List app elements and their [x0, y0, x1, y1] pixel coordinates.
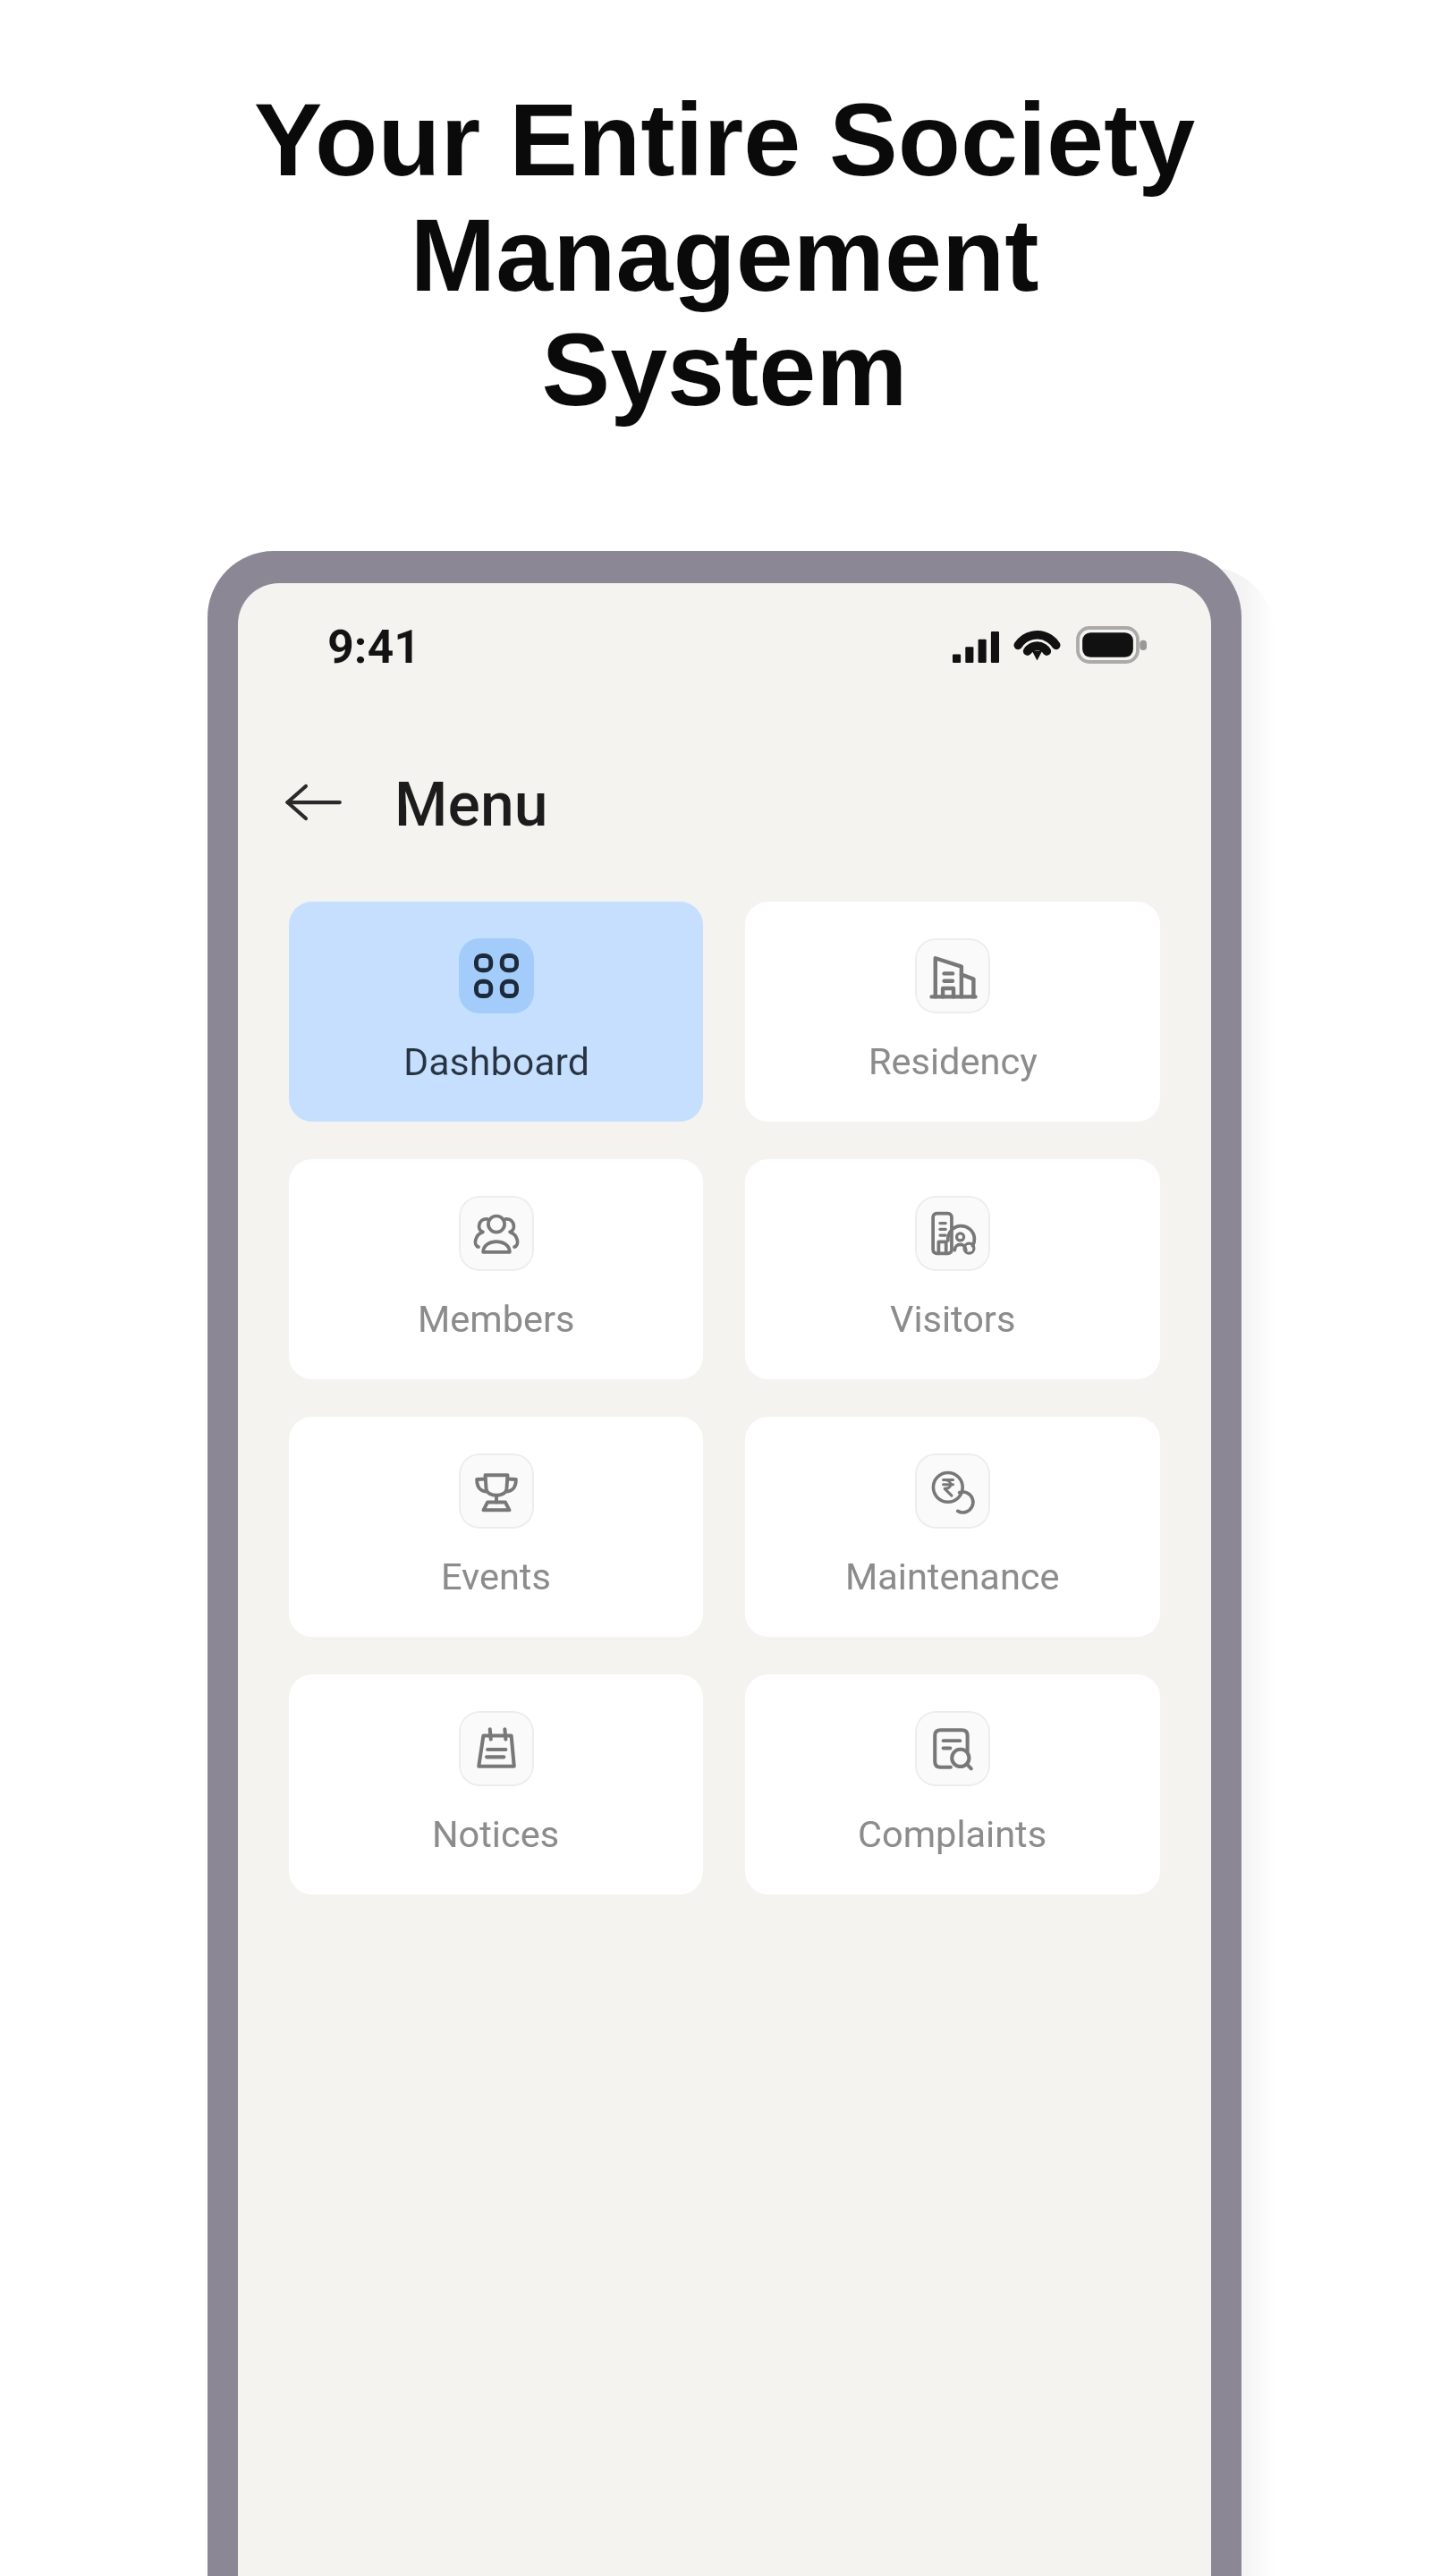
- button[interactable]: Visitors: [745, 1159, 1160, 1379]
- button[interactable]: Complaints: [745, 1674, 1160, 1894]
- staticText: 9:41: [327, 620, 421, 674]
- button[interactable]: Members: [289, 1159, 703, 1379]
- staticText: Maintenance: [845, 1555, 1060, 1598]
- staticText: Notices: [432, 1812, 560, 1856]
- staticText: Dashboard: [403, 1039, 589, 1084]
- staticText: Menu: [394, 769, 548, 841]
- button[interactable]: Notices: [289, 1674, 703, 1894]
- staticText: Members: [418, 1297, 575, 1341]
- staticText: Events: [441, 1555, 551, 1598]
- button[interactable]: Residency: [745, 902, 1160, 1122]
- button[interactable]: Dashboard: [289, 902, 703, 1122]
- staticText: Your Entire Society Management System: [0, 82, 1449, 427]
- button[interactable]: Maintenance: [745, 1417, 1160, 1637]
- staticText: Complaints: [858, 1812, 1047, 1856]
- staticText: Visitors: [890, 1297, 1016, 1341]
- staticText: Residency: [869, 1039, 1038, 1083]
- button[interactable]: Events: [289, 1417, 703, 1637]
- button[interactable]: Back: [272, 761, 354, 843]
